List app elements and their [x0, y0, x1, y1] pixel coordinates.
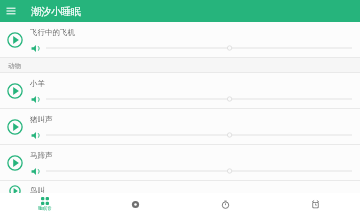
staticText: 潮汐小睡眠	[31, 5, 81, 18]
button[interactable]: Mute 小羊	[30, 94, 40, 104]
button[interactable]: Open navigation menu	[0, 0, 22, 22]
button[interactable]: Mute 猪叫声	[30, 130, 40, 140]
button[interactable]: Focus	[90, 193, 180, 215]
staticText: 睡眠音	[38, 206, 52, 212]
button[interactable]: 鸟叫	[0, 181, 360, 193]
button[interactable]: Volume for 马蹄声	[46, 166, 352, 176]
button[interactable]: Play 马蹄声	[0, 145, 360, 181]
staticText: 小羊	[30, 79, 45, 88]
button[interactable]: Volume for 猪叫声	[46, 130, 352, 140]
button[interactable]: Play 猪叫声	[0, 109, 30, 145]
button[interactable]: Mute 飞行中的飞机	[30, 43, 40, 53]
button[interactable]: Volume for 飞行中的飞机	[46, 43, 352, 53]
button[interactable]: Volume for 小羊	[46, 94, 352, 104]
button[interactable]: Play 小羊	[0, 73, 360, 109]
button[interactable]: Timer	[180, 193, 270, 215]
button[interactable]: Play 猪叫声	[0, 109, 360, 145]
button[interactable]: Play 飞行中的飞机	[0, 22, 360, 58]
staticText: 飞行中的飞机	[30, 28, 75, 37]
button[interactable]: Alarm	[270, 193, 360, 215]
button[interactable]: 睡眠音	[0, 193, 90, 215]
button[interactable]: Play 小羊	[0, 73, 30, 109]
staticText: 动物	[8, 62, 21, 70]
staticText: 马蹄声	[30, 151, 53, 160]
button[interactable]: Play 飞行中的飞机	[0, 22, 30, 58]
button[interactable]: Mute 马蹄声	[30, 166, 40, 176]
staticText: 猪叫声	[30, 115, 53, 124]
staticText: 鸟叫	[30, 186, 45, 193]
button[interactable]: Play 马蹄声	[0, 145, 30, 181]
